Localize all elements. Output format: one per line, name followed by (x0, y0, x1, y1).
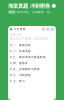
button[interactable]: 四、错题本 (8, 60, 56, 66)
staticText: 覆盖近五年真题，助你高效冲刺满分 (10, 37, 54, 40)
staticText: 一、基础训练 (13, 43, 31, 47)
staticText: 精准押题 · 名师解析 · 限时免费领取 (17, 10, 55, 14)
button[interactable]: 二、专项突破 (8, 48, 56, 54)
staticText: 二、专项突破 (13, 49, 31, 53)
button[interactable]: 三、模拟考场与真题精讲 (8, 54, 56, 60)
button[interactable]: 五、名师解析与答疑 (8, 66, 56, 72)
staticText: 四、错题本 (13, 61, 28, 65)
staticText: 三、模拟考场与真题精讲 (13, 55, 46, 59)
staticText: 今日推荐 (14, 28, 26, 31)
staticText: 七、复习 (13, 79, 25, 83)
button[interactable]: 七、复习 (8, 78, 56, 84)
button[interactable]: 六、冲刺密卷 (8, 72, 56, 78)
staticText: 推荐 (9, 10, 15, 14)
button[interactable]: 一、基础训练 (8, 42, 56, 48)
staticText: 五、名师解析与答疑 (13, 67, 40, 71)
staticText: 海棠真题 冲刺密卷 (8, 3, 50, 9)
staticText: 全新上线 (10, 33, 22, 36)
staticText: 六、冲刺密卷 (13, 73, 31, 77)
button[interactable]: 用户 (52, 4, 56, 8)
